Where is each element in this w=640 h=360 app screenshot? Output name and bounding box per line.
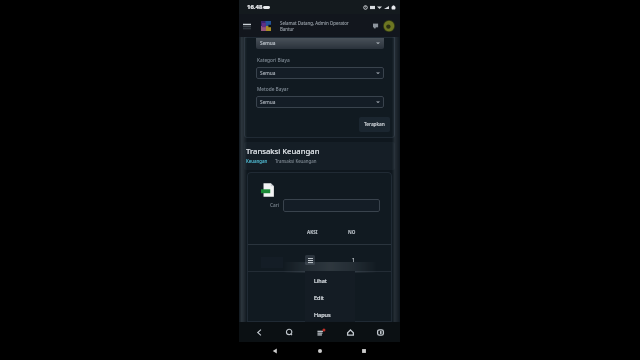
button[interactable] bbox=[305, 288, 355, 305]
button[interactable] bbox=[283, 199, 380, 212]
button[interactable]: Bookmarks bbox=[370, 322, 390, 342]
button[interactable]: Terapkan bbox=[359, 117, 390, 132]
button[interactable]: Profile bbox=[383, 20, 395, 32]
staticText: Keuangan bbox=[246, 158, 268, 164]
staticText: Semua bbox=[260, 99, 276, 106]
staticText: Terapkan bbox=[364, 121, 385, 128]
button[interactable]: Semua bbox=[256, 96, 384, 108]
staticText: 1 bbox=[352, 257, 355, 264]
staticText: 16.48 bbox=[247, 3, 263, 11]
staticText: AKSI bbox=[307, 229, 318, 235]
button[interactable]: Search bbox=[279, 322, 299, 342]
staticText: Bantur bbox=[280, 26, 295, 32]
button[interactable] bbox=[305, 305, 355, 322]
staticText: Kategori Biaya bbox=[257, 57, 290, 64]
staticText: Edit bbox=[314, 294, 324, 301]
staticText: Semua bbox=[260, 40, 276, 47]
button[interactable]: Home bbox=[340, 322, 360, 342]
button[interactable]: Back bbox=[249, 322, 269, 342]
staticText: Semua bbox=[260, 70, 276, 77]
staticText: Transaksi Keuangan bbox=[246, 146, 320, 157]
button[interactable] bbox=[305, 271, 355, 288]
button[interactable]: Back bbox=[266, 342, 284, 360]
button[interactable]: Home bbox=[311, 342, 329, 360]
staticText: Metode Bayar bbox=[257, 86, 289, 93]
staticText: Selamat Datang, Admin Operator bbox=[280, 20, 349, 26]
button[interactable]: Semua bbox=[256, 37, 384, 49]
staticText: Lihat bbox=[314, 277, 327, 284]
staticText: NO bbox=[348, 229, 356, 235]
button[interactable]: Semua bbox=[256, 67, 384, 79]
staticText: Transaksi Keuangan bbox=[275, 158, 317, 164]
staticText: Hapus bbox=[314, 311, 331, 318]
button[interactable]: Row actions bbox=[305, 255, 315, 265]
button[interactable]: Tabs bbox=[310, 322, 330, 342]
staticText: Cari bbox=[270, 202, 279, 209]
button[interactable]: Recent apps bbox=[355, 342, 373, 360]
button[interactable]: Messages bbox=[370, 20, 381, 31]
button[interactable]: Open navigation menu bbox=[240, 19, 253, 32]
